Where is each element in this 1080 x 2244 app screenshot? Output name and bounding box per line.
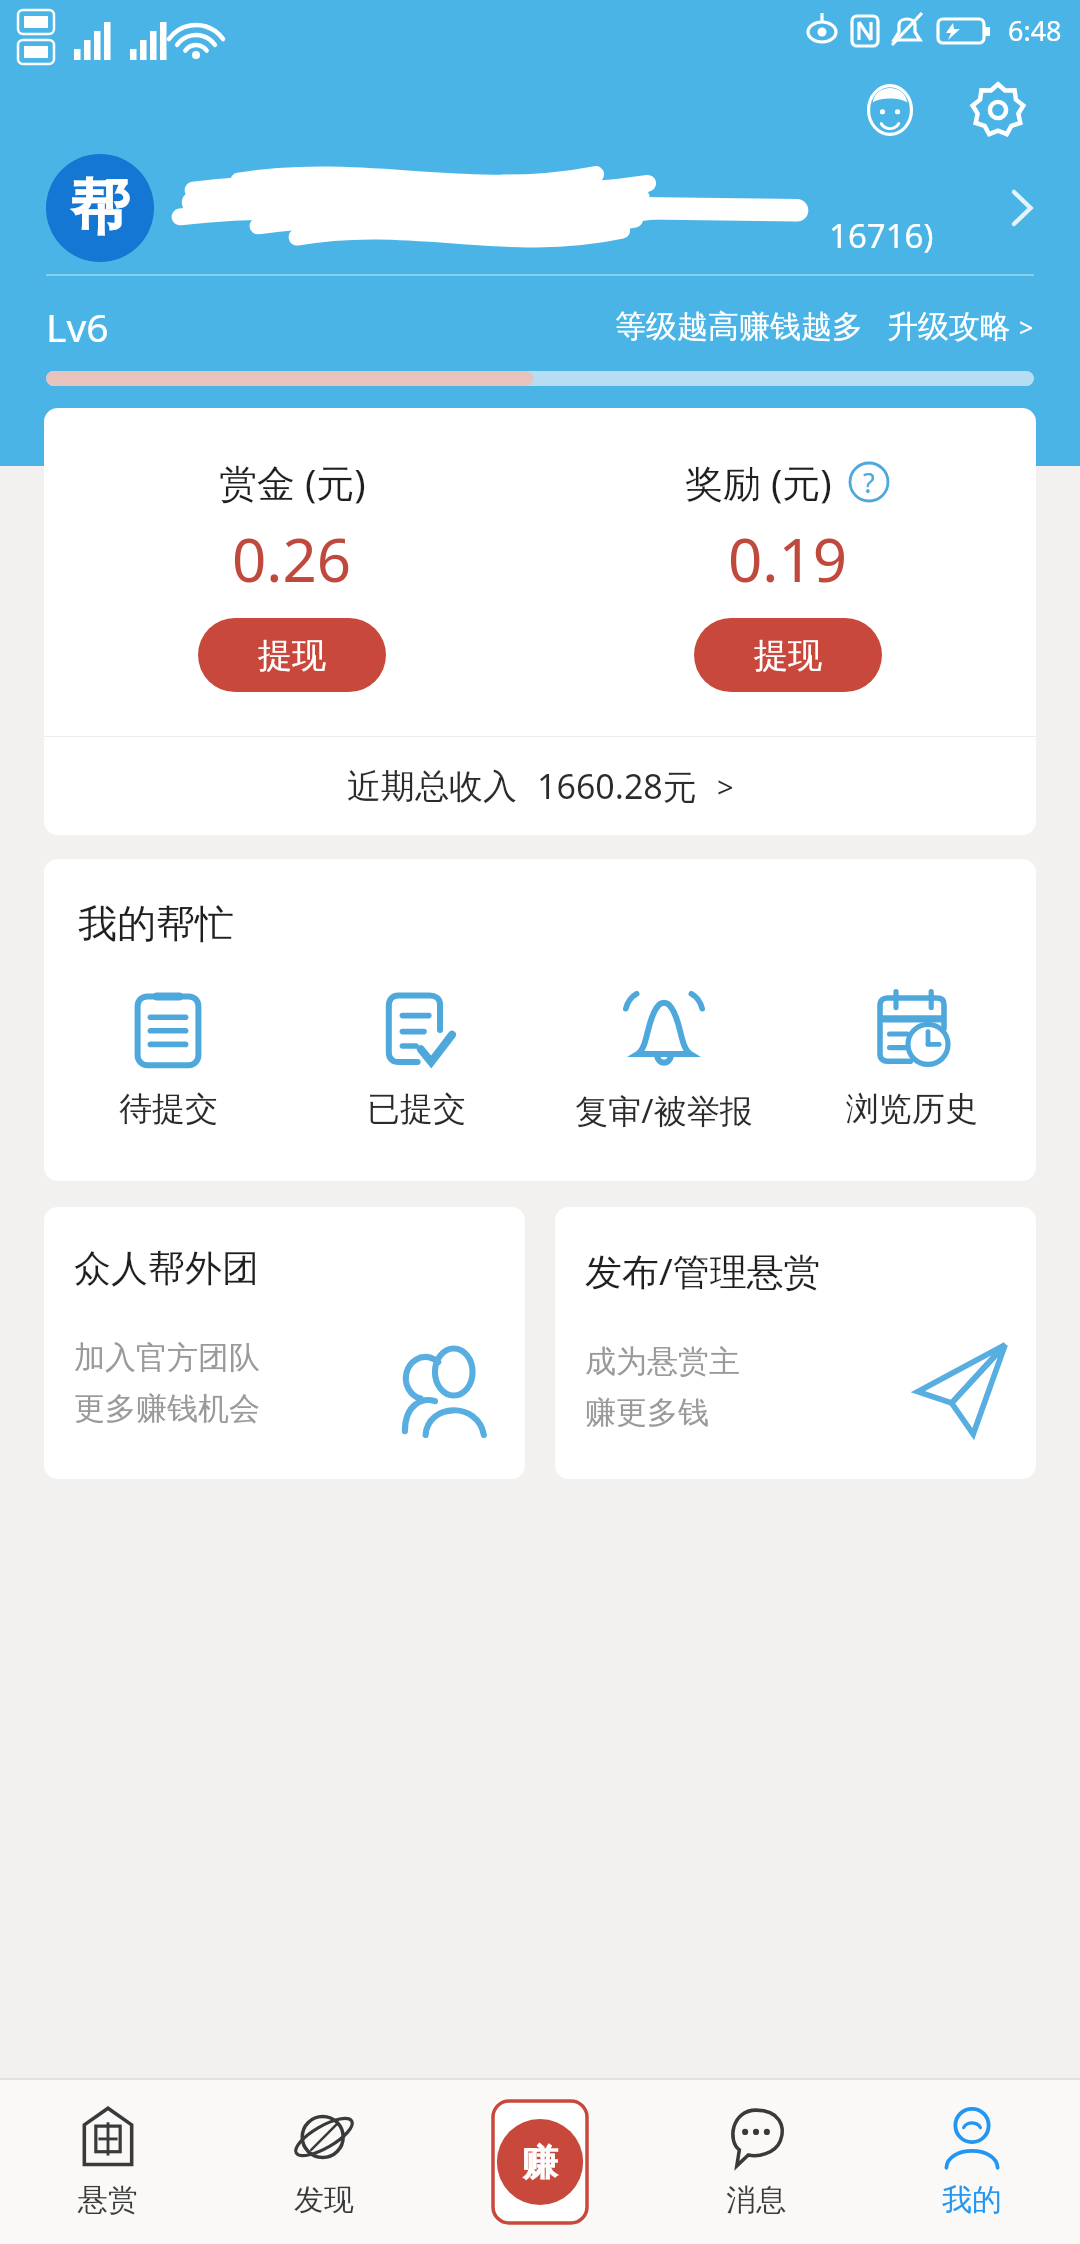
- staticText: 16716): [829, 213, 934, 258]
- staticText: 已提交: [367, 1088, 466, 1130]
- staticText: 众人帮外团: [74, 1245, 259, 1292]
- staticText: >: [1019, 310, 1034, 344]
- staticText: 复审/被举报: [575, 1088, 753, 1133]
- button[interactable]: 升级攻略: [887, 307, 1034, 346]
- staticText: >: [717, 767, 734, 806]
- staticText: 等级越高赚钱越多: [615, 307, 863, 346]
- button[interactable]: Settings: [960, 72, 1036, 148]
- staticText: 悬赏: [78, 2181, 138, 2219]
- staticText: 我的: [942, 2181, 1002, 2219]
- staticText: 提现: [754, 634, 822, 677]
- staticText: 待提交: [119, 1088, 218, 1130]
- button[interactable]: 近期总收入: [44, 737, 1036, 835]
- button[interactable]: 消息: [648, 2080, 864, 2244]
- button[interactable]: 发布/管理悬赏: [555, 1207, 1036, 1479]
- button[interactable]: 提现: [198, 618, 386, 692]
- staticText: 更多赚钱机会: [74, 1389, 260, 1428]
- staticText: 帮: [70, 170, 130, 246]
- staticText: 发现: [294, 2181, 354, 2219]
- button[interactable]: 已提交: [292, 990, 540, 1130]
- button[interactable]: 浏览历史: [788, 990, 1036, 1130]
- staticText: 赚: [522, 2140, 558, 2185]
- staticText: ?: [863, 464, 875, 501]
- staticText: 0.26: [232, 518, 352, 600]
- staticText: 消息: [726, 2181, 786, 2219]
- button[interactable]: 待提交: [44, 990, 292, 1130]
- staticText: 我的帮忙: [78, 899, 234, 948]
- other: Profile details: [992, 179, 1050, 237]
- staticText: 赚更多钱: [585, 1393, 709, 1432]
- staticText: 奖励 (元): [685, 456, 832, 508]
- staticText: 0.19: [728, 518, 848, 600]
- staticText: 成为悬赏主: [585, 1342, 740, 1381]
- button[interactable]: Earn: [491, 2099, 589, 2225]
- staticText: 提现: [258, 634, 326, 677]
- staticText: 赏金 (元): [219, 456, 366, 508]
- staticText: 加入官方团队: [74, 1338, 260, 1377]
- button[interactable]: 众人帮外团: [44, 1207, 525, 1479]
- staticText: 升级攻略: [887, 307, 1011, 346]
- button[interactable]: 悬赏: [0, 2080, 216, 2244]
- button[interactable]: 提现: [694, 618, 882, 692]
- staticText: 6:48: [1008, 12, 1062, 49]
- button[interactable]: 发现: [216, 2080, 432, 2244]
- staticText: 近期总收入: [347, 765, 517, 808]
- button[interactable]: 帮: [46, 152, 1050, 264]
- staticText: 发布/管理悬赏: [585, 1245, 821, 1296]
- staticText: Lv6: [46, 300, 109, 353]
- button[interactable]: Customer service: [852, 72, 928, 148]
- button[interactable]: 复审/被举报: [540, 990, 788, 1133]
- button[interactable]: Reward help: [846, 459, 892, 505]
- staticText: 1660.28元: [537, 763, 697, 809]
- staticText: 浏览历史: [846, 1088, 978, 1130]
- button[interactable]: 我的: [864, 2080, 1080, 2244]
